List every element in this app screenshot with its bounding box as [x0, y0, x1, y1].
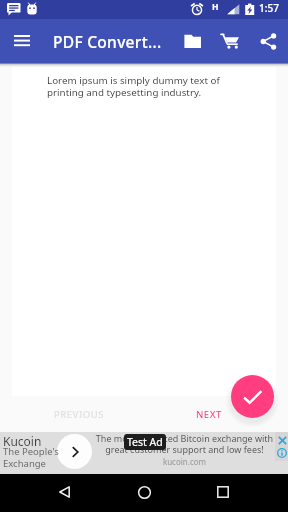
- staticText: kucoin.com: [95, 456, 274, 467]
- staticText: The most advanced Bitcoin exchange with …: [95, 432, 274, 455]
- staticText: PDF Convert...: [53, 31, 162, 52]
- button[interactable]: Done: [231, 375, 274, 418]
- staticText: Test Ad: [127, 435, 163, 449]
- button[interactable]: Home: [126, 474, 162, 510]
- staticText: PREVIOUS: [54, 408, 104, 421]
- staticText: Lorem ipsum is simply dummy text of prin…: [47, 74, 220, 99]
- button[interactable]: Kucoin: [0, 432, 288, 474]
- button[interactable]: Shop: [213, 24, 247, 58]
- button[interactable]: NEXT: [186, 402, 288, 427]
- button[interactable]: Ad info: [276, 447, 288, 458]
- staticText: Kucoin: [3, 433, 42, 449]
- staticText: 1:57: [259, 1, 279, 15]
- staticText: The People's Exchange: [3, 445, 59, 469]
- button[interactable]: Close ad: [276, 435, 288, 446]
- button[interactable]: Menu: [4, 23, 40, 59]
- button[interactable]: Share: [251, 24, 285, 58]
- button[interactable]: Back: [46, 474, 82, 510]
- button[interactable]: PREVIOUS: [0, 402, 114, 427]
- staticText: NEXT: [196, 408, 222, 421]
- button[interactable]: Open folder: [175, 24, 209, 58]
- button[interactable]: Recent apps: [205, 474, 241, 510]
- staticText: H: [212, 1, 219, 13]
